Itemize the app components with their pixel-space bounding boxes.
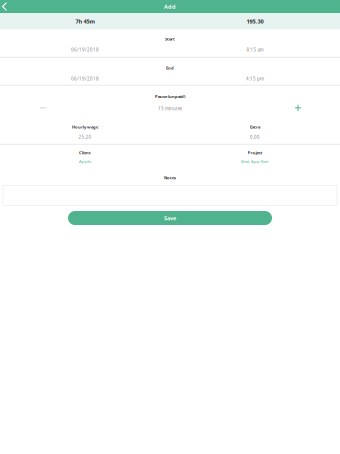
- staticText: 195.30: [246, 17, 263, 25]
- button[interactable]: Decrease pause: [36, 101, 50, 115]
- button[interactable]: Save: [68, 211, 272, 225]
- staticText: 4:15 pm: [246, 76, 264, 82]
- button[interactable]: Extra: [170, 115, 340, 144]
- staticText: End: [166, 65, 174, 71]
- staticText: Apple: [79, 158, 91, 164]
- staticText: Client: [79, 150, 91, 155]
- button[interactable]: End: [0, 58, 340, 85]
- button[interactable]: Start: [0, 29, 340, 57]
- staticText: 0.00: [250, 134, 260, 140]
- staticText: 8:15 am: [246, 47, 263, 53]
- button[interactable]: Hourly wage: [0, 115, 170, 144]
- staticText: Add: [164, 3, 176, 10]
- button[interactable]: Back: [0, 0, 13, 13]
- staticText: Notes: [164, 175, 176, 180]
- staticText: Start: [165, 36, 175, 42]
- staticText: Best App Ever: [241, 158, 269, 164]
- staticText: 06/19/2018: [71, 47, 99, 53]
- button[interactable]: Client: [0, 145, 170, 174]
- staticText: 7h 45m: [75, 17, 94, 25]
- staticText: Project: [247, 150, 262, 155]
- staticText: 25.20: [78, 134, 91, 140]
- staticText: Hourly wage: [72, 124, 98, 130]
- button[interactable]: Project: [170, 145, 340, 174]
- staticText: Pause (unpaid): [155, 94, 185, 99]
- button[interactable]: Increase pause: [291, 101, 305, 115]
- staticText: Save: [164, 214, 176, 222]
- staticText: 06/19/2018: [71, 76, 99, 82]
- staticText: 15 minutes: [158, 105, 182, 111]
- staticText: Extra: [250, 124, 260, 130]
